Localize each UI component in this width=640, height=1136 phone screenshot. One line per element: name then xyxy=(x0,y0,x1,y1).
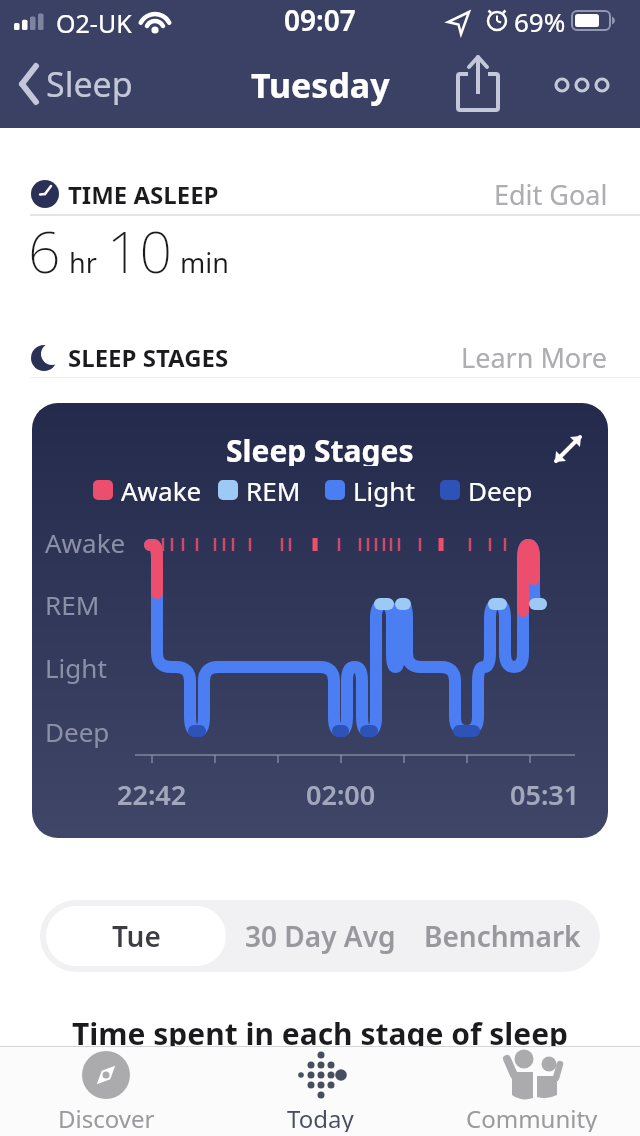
button[interactable] xyxy=(548,68,618,102)
staticText: 30 Day Avg xyxy=(245,917,396,955)
staticText: SLEEP STAGES xyxy=(68,341,229,374)
button[interactable]: 30 Day Avg xyxy=(230,900,410,972)
button[interactable]: Benchmark xyxy=(418,900,586,972)
staticText: Awake xyxy=(45,525,126,559)
button[interactable]: Sleep xyxy=(8,56,158,112)
staticText: Sleep Stages xyxy=(226,430,414,466)
staticText: REM xyxy=(246,473,301,507)
staticText: Light xyxy=(353,473,415,507)
staticText: O2-UK xyxy=(56,6,132,40)
button[interactable] xyxy=(540,421,596,477)
staticText: Deep xyxy=(468,473,533,507)
staticText: TIME ASLEEP xyxy=(68,178,219,211)
button[interactable]: Discover xyxy=(36,1046,176,1136)
button[interactable] xyxy=(448,52,508,116)
staticText: 02:00 xyxy=(306,776,376,808)
staticText: 6 xyxy=(28,212,61,290)
button[interactable]: Today xyxy=(250,1046,390,1136)
staticText: Today xyxy=(287,1102,354,1132)
button[interactable]: Community xyxy=(460,1046,604,1136)
staticText: 10 xyxy=(107,212,172,290)
staticText: Tue xyxy=(112,917,161,955)
staticText: Learn More xyxy=(461,339,608,375)
staticText: Awake xyxy=(121,473,202,507)
staticText: Tuesday xyxy=(251,62,390,106)
staticText: Sleep xyxy=(46,61,133,107)
button[interactable]: Learn More xyxy=(408,339,608,375)
staticText: REM xyxy=(45,587,100,621)
staticText: 22:42 xyxy=(117,776,187,808)
staticText: 09:07 xyxy=(284,1,356,39)
button[interactable]: Tue xyxy=(46,906,226,966)
staticText: Edit Goal xyxy=(494,176,608,212)
staticText: Deep xyxy=(45,714,110,748)
staticText: Benchmark xyxy=(424,917,581,955)
staticText: 69% xyxy=(514,4,566,39)
staticText: Community xyxy=(466,1102,598,1132)
staticText: hr xyxy=(69,244,97,281)
staticText: Time spent in each stage of sleep xyxy=(72,1013,569,1047)
staticText: min xyxy=(180,244,229,281)
staticText: Light xyxy=(45,650,107,684)
staticText: 05:31 xyxy=(510,776,580,808)
staticText: Discover xyxy=(58,1102,155,1132)
button[interactable]: Edit Goal xyxy=(408,176,608,212)
